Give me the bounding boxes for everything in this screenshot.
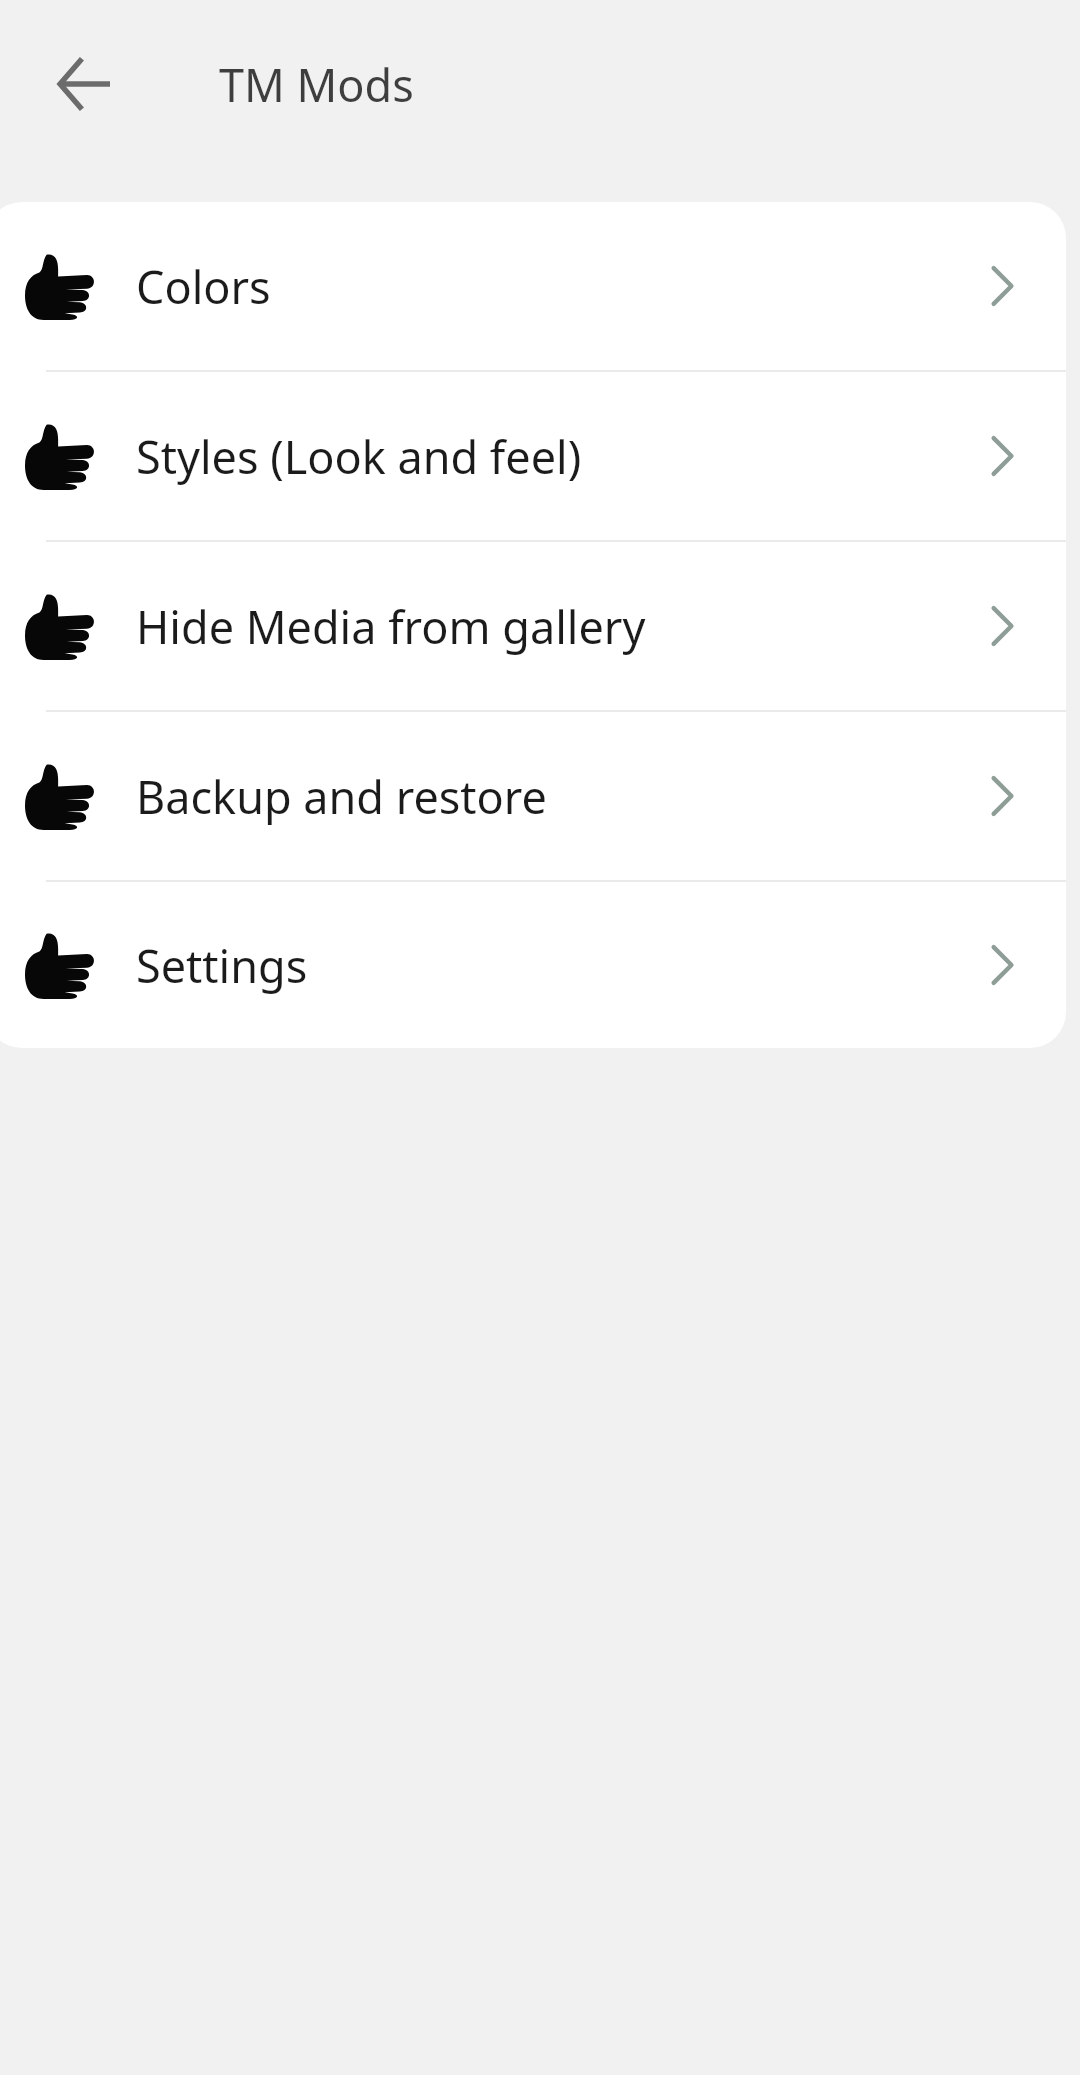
- staticText: Backup and restore: [136, 766, 547, 827]
- staticText: TM Mods: [219, 54, 414, 115]
- button[interactable]: Settings: [0, 882, 1066, 1048]
- button[interactable]: Colors: [0, 202, 1066, 370]
- button[interactable]: Back: [44, 44, 124, 124]
- staticText: Settings: [136, 935, 308, 996]
- button[interactable]: Backup and restore: [0, 712, 1066, 880]
- staticText: Colors: [136, 256, 271, 317]
- button[interactable]: Styles (Look and feel): [0, 372, 1066, 540]
- staticText: Hide Media from gallery: [136, 596, 646, 657]
- button[interactable]: Hide Media from gallery: [0, 542, 1066, 710]
- staticText: Styles (Look and feel): [136, 426, 582, 487]
